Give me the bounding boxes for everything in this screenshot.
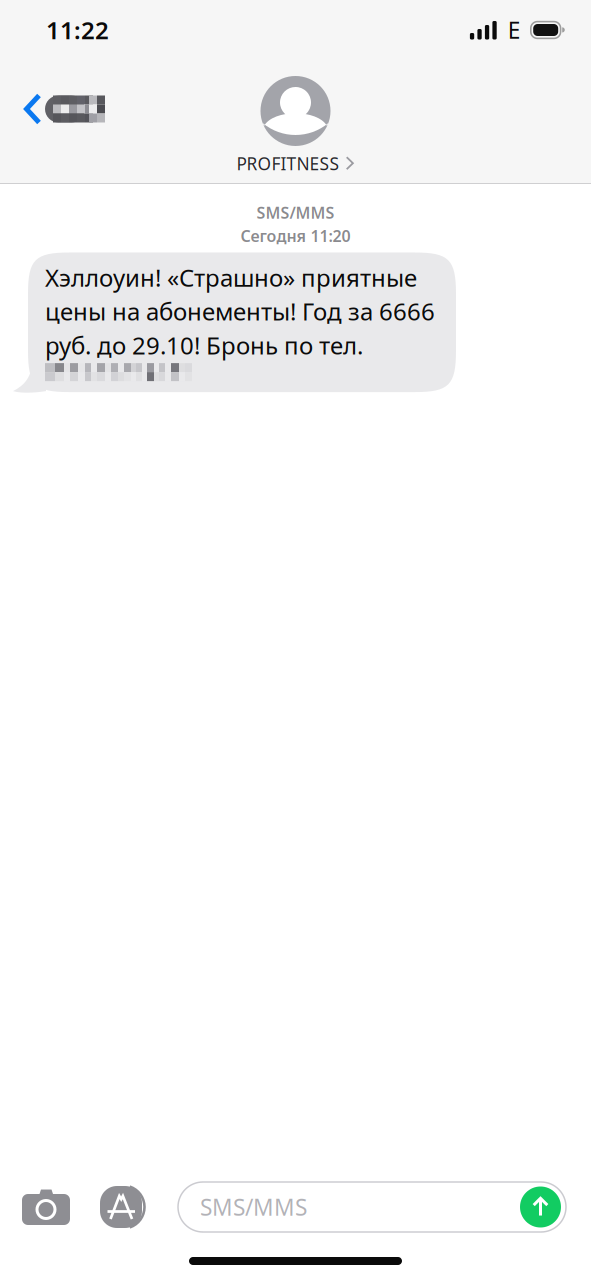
staticText: Хэллоуин! «Страшно» приятные bbox=[45, 261, 417, 293]
staticText: E bbox=[508, 15, 521, 45]
button[interactable]: PROFITNESS bbox=[236, 146, 354, 175]
staticText: 11:22 bbox=[46, 14, 109, 46]
staticText: SMS/MMS bbox=[256, 202, 334, 223]
button[interactable]: Send bbox=[520, 1186, 561, 1227]
button[interactable]: Apps bbox=[100, 1185, 148, 1229]
staticText: Сегодня 11:20 bbox=[240, 225, 350, 246]
staticText: PROFITNESS bbox=[236, 152, 339, 175]
button[interactable]: Back bbox=[24, 93, 105, 125]
staticText: руб. до 29.10! Бронь по тел. bbox=[45, 329, 363, 361]
staticText: SMS/MMS bbox=[200, 1192, 307, 1222]
staticText: цены на абонементы! Год за 6666 bbox=[45, 295, 435, 327]
button[interactable]: Camera bbox=[22, 1188, 70, 1226]
